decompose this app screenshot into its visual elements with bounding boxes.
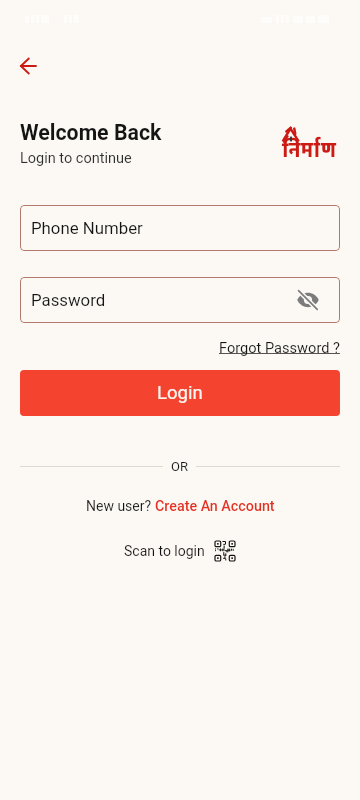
staticText: Forgot Password ? (219, 339, 340, 356)
staticText: Phone Number (31, 218, 143, 238)
button[interactable]: Login (20, 370, 340, 416)
staticText: Login to continue (20, 150, 132, 167)
button[interactable]: Password (20, 277, 340, 323)
button[interactable]: Phone Number (20, 205, 340, 251)
button[interactable]: Show password (295, 287, 321, 313)
staticText: Scan to login (124, 543, 205, 559)
staticText: Welcome Back (20, 120, 162, 145)
staticText: निर्माण (282, 135, 337, 170)
staticText: Login (157, 382, 203, 404)
staticText: OR (171, 459, 188, 474)
button[interactable]: Scan to login (124, 541, 235, 561)
button[interactable]: Back (8, 46, 48, 86)
staticText: New user? (86, 498, 155, 514)
staticText: Create An Account (155, 498, 275, 515)
button[interactable]: Create An Account (155, 498, 275, 515)
staticText: Password (31, 290, 106, 310)
button[interactable]: Forgot Password ? (215, 336, 344, 359)
